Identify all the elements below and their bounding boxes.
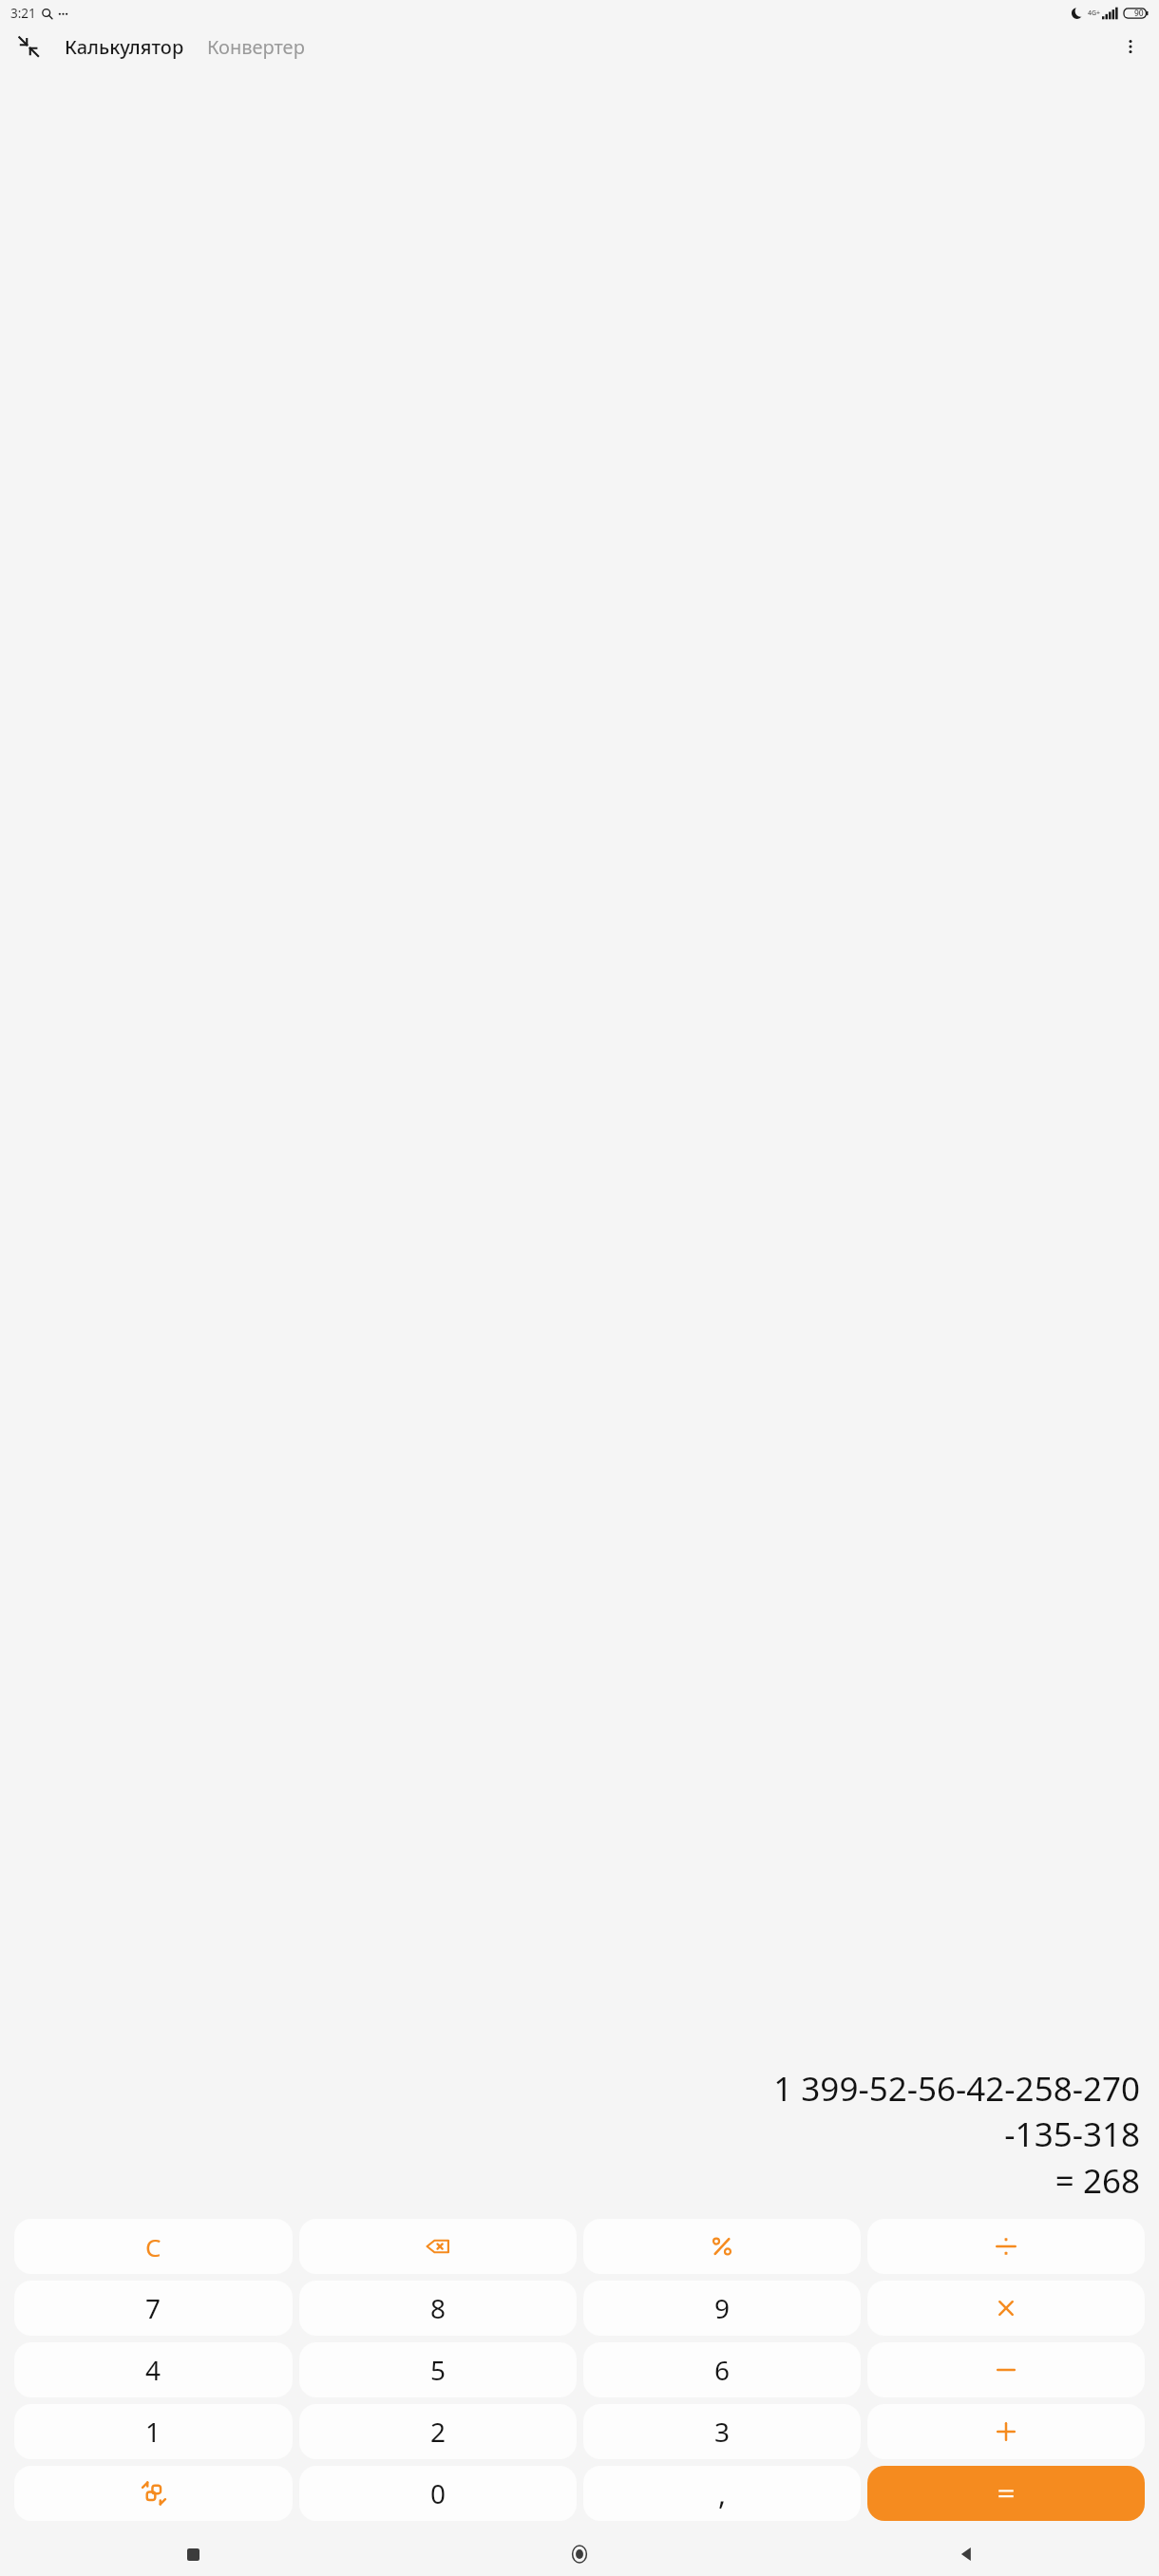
- button[interactable]: Back: [772, 2532, 1159, 2576]
- button[interactable]: Recents: [0, 2532, 386, 2576]
- staticText: 1: [145, 2414, 161, 2450]
- button[interactable]: 1: [14, 2404, 293, 2459]
- button[interactable]: Equals: [867, 2466, 1145, 2521]
- staticText: Конвертер: [207, 34, 305, 60]
- staticText: ,: [718, 2474, 727, 2513]
- button[interactable]: 8: [299, 2281, 577, 2336]
- staticText: 2: [430, 2414, 446, 2450]
- staticText: 4G+: [1088, 9, 1101, 18]
- staticText: = 268: [1054, 2158, 1140, 2204]
- button[interactable]: 2: [299, 2404, 577, 2459]
- button[interactable]: Percent: [583, 2219, 861, 2274]
- staticText: 5: [430, 2352, 446, 2388]
- button[interactable]: More options: [1111, 28, 1149, 66]
- button[interactable]: 7: [14, 2281, 293, 2336]
- staticText: C: [145, 2230, 161, 2263]
- staticText: 7: [145, 2290, 161, 2326]
- button[interactable]: Backspace: [299, 2219, 577, 2274]
- button[interactable]: Divide: [867, 2219, 1145, 2274]
- staticText: Калькулятор: [65, 34, 184, 60]
- button[interactable]: 4: [14, 2342, 293, 2397]
- button[interactable]: 5: [299, 2342, 577, 2397]
- button[interactable]: Multiply: [867, 2281, 1145, 2336]
- button[interactable]: 3: [583, 2404, 861, 2459]
- button[interactable]: Конвертер: [201, 30, 311, 64]
- staticText: 0: [430, 2475, 446, 2511]
- staticText: 4: [145, 2352, 161, 2388]
- button[interactable]: 0: [299, 2466, 577, 2521]
- button[interactable]: Калькулятор: [59, 30, 190, 64]
- button[interactable]: 6: [583, 2342, 861, 2397]
- button[interactable]: Minus: [867, 2342, 1145, 2397]
- staticText: 90: [1134, 8, 1144, 19]
- button[interactable]: Plus: [867, 2404, 1145, 2459]
- staticText: 9: [714, 2290, 731, 2326]
- staticText: 3: [714, 2414, 731, 2450]
- button[interactable]: C: [14, 2219, 293, 2274]
- button[interactable]: Convert: [14, 2466, 293, 2521]
- staticText: 6: [714, 2352, 731, 2388]
- staticText: 1 399-52-56-42-258-270 -135-318: [773, 2066, 1140, 2156]
- staticText: 8: [430, 2290, 446, 2326]
- staticText: 3:21: [10, 5, 36, 22]
- button[interactable]: 9: [583, 2281, 861, 2336]
- button[interactable]: Home: [386, 2532, 772, 2576]
- button[interactable]: ,: [583, 2466, 861, 2521]
- button[interactable]: Collapse: [9, 28, 47, 66]
